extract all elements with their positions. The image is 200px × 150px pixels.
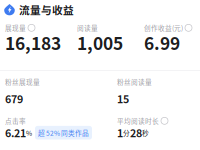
- staticText: %: [26, 128, 32, 138]
- staticText: 点击率: [5, 116, 26, 126]
- staticText: 1,005: [77, 30, 123, 55]
- staticText: 流量与收益: [19, 2, 74, 17]
- staticText: 创作收益(元): [144, 23, 183, 33]
- button[interactable]: 流量与收益: [4, 2, 74, 17]
- staticText: 分: [123, 128, 130, 138]
- staticText: 679: [5, 91, 23, 106]
- staticText: 6.21: [5, 125, 26, 140]
- staticText: 秒: [142, 128, 149, 138]
- staticText: 粉丝阅读量: [117, 77, 152, 87]
- button[interactable]: 粉丝展现量: [5, 77, 115, 105]
- staticText: 粉丝展现量: [5, 77, 40, 87]
- button[interactable]: 平均阅读时长: [117, 116, 197, 139]
- staticText: 15: [117, 91, 129, 106]
- button[interactable]: 创作收益(元): [144, 23, 200, 44]
- button[interactable]: 粉丝阅读量: [117, 77, 197, 105]
- button[interactable]: 阅读量: [77, 23, 141, 44]
- button[interactable]: 点击率: [5, 116, 115, 139]
- staticText: 1: [117, 125, 123, 140]
- staticText: 16,183: [5, 30, 61, 55]
- staticText: 阅读量: [77, 23, 98, 33]
- button[interactable]: 展现量: [5, 23, 75, 44]
- staticText: 超 52% 同类作品: [38, 128, 89, 138]
- staticText: 展现量: [5, 23, 26, 33]
- staticText: 平均阅读时长: [117, 116, 159, 126]
- staticText: 28: [130, 125, 142, 140]
- staticText: 6.99: [144, 30, 180, 55]
